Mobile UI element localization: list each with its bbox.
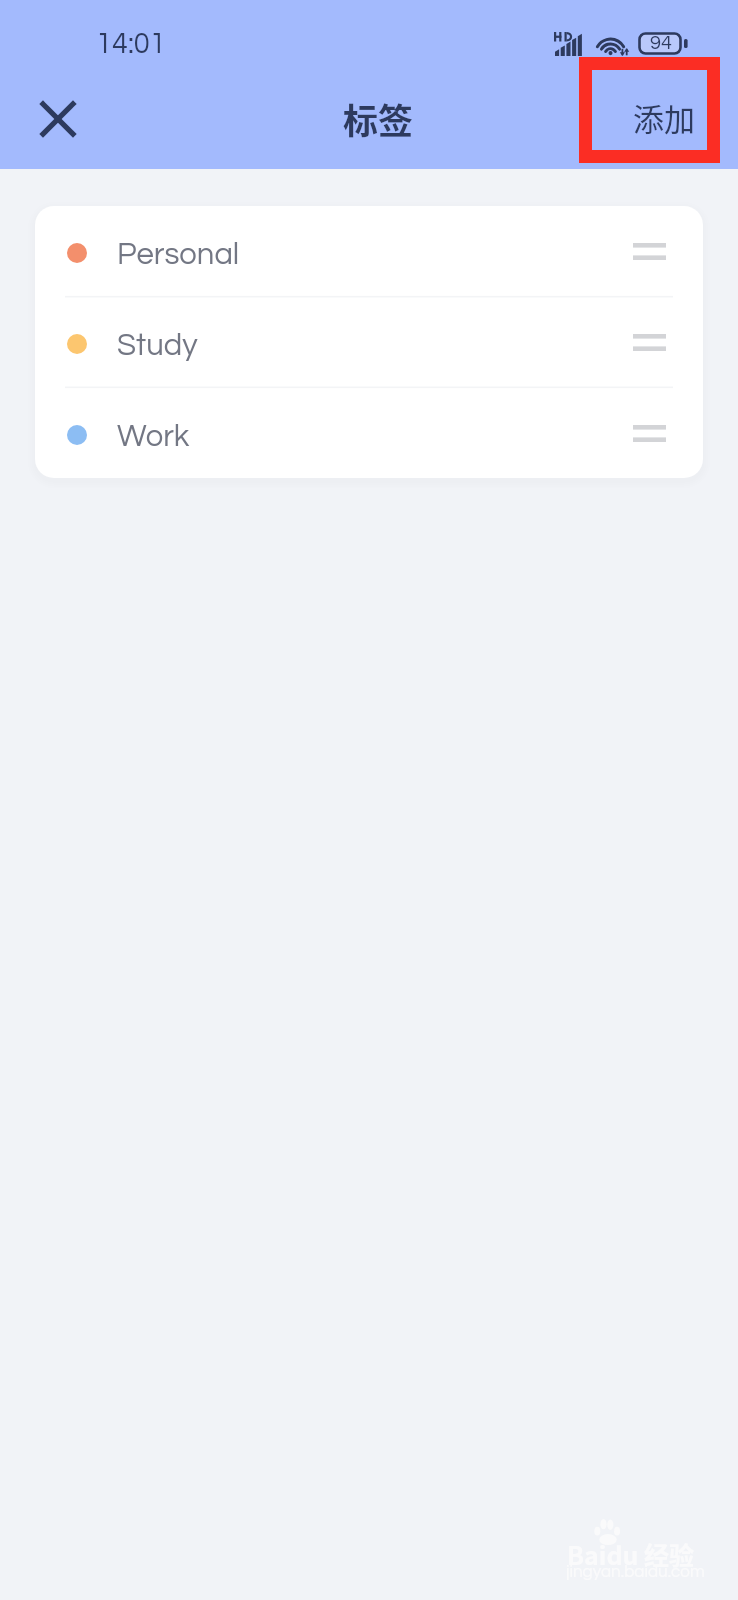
button[interactable]: 添加	[614, 84, 714, 157]
staticText: Study	[117, 330, 198, 362]
button[interactable]: Close	[24, 85, 92, 153]
staticText: 94	[650, 33, 672, 54]
staticText: Baidu 经验	[567, 1536, 695, 1572]
staticText: 14:01	[96, 29, 166, 59]
staticText: 标签	[343, 93, 414, 144]
staticText: 添加	[633, 95, 695, 140]
staticText: jingyan.baidu.com	[566, 1563, 705, 1581]
button[interactable]: Reorder	[619, 221, 679, 281]
staticText: Personal	[117, 239, 240, 271]
button[interactable]: Reorder	[619, 312, 679, 372]
button[interactable]: Study	[35, 296, 703, 387]
button[interactable]: Reorder	[619, 403, 679, 463]
button[interactable]: Personal	[35, 206, 703, 296]
button[interactable]: Work	[35, 387, 703, 478]
staticText: Work	[117, 421, 190, 453]
